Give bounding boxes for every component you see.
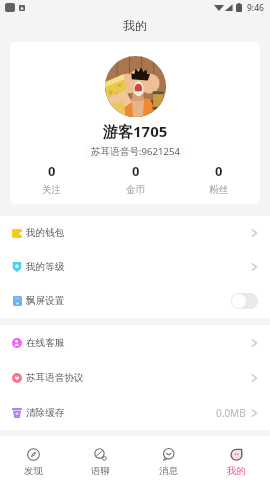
staticText: 粉丝 [209,184,229,196]
button[interactable]: 我的等级 [0,250,270,284]
staticText: 飘屏设置 [26,295,65,307]
staticText: 0.0MB [216,406,246,420]
button[interactable]: 消息 [134,436,202,480]
button[interactable]: 0 [94,160,177,198]
staticText: 我的 [123,18,147,33]
button[interactable]: 在线客服 [0,325,270,360]
staticText: 0 [48,162,56,180]
button[interactable]: 清除缓存 [0,395,270,430]
staticText: 0 [215,162,223,180]
staticText: 金币 [126,184,146,196]
staticText: 苏耳语音协议 [26,372,84,384]
staticText: 发现 [24,465,43,477]
button[interactable]: 0 [10,160,94,198]
staticText: 我的等级 [26,261,65,273]
staticText: 9:46 [247,2,264,14]
button[interactable]: 我的 [202,436,270,480]
staticText: 苏耳语音号:9621254 [91,145,180,158]
button[interactable]: 我的钱包 [0,216,270,250]
button[interactable]: 语聊 [67,436,134,480]
staticText: 清除缓存 [26,407,65,419]
button[interactable]: 飘屏设置 [0,284,270,318]
staticText: 0 [132,162,140,180]
staticText: 关注 [42,184,62,196]
button[interactable]: 发现 [0,436,67,480]
staticText: 语聊 [91,465,110,477]
button[interactable]: 苏耳语音协议 [0,360,270,395]
staticText: 我的 [227,465,246,477]
staticText: 我的钱包 [26,227,65,239]
staticText: 在线客服 [26,337,65,349]
staticText: 游客1705 [103,121,168,141]
button[interactable]: Toggle floating screen [231,293,258,309]
button[interactable]: 0 [177,160,260,198]
staticText: 消息 [159,465,178,477]
